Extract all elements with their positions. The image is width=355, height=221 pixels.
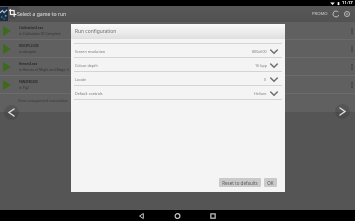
- staticText: DISCIPL2.EXE: [19, 44, 39, 48]
- staticText: in disciples: [19, 49, 37, 54]
- button[interactable]: Colour depth: [71, 58, 285, 72]
- staticText: Locale: [75, 77, 87, 82]
- staticText: Default controls: [75, 91, 103, 96]
- staticText: in Civilization III Complete: [19, 31, 61, 36]
- staticText: Colour depth: [75, 63, 98, 68]
- staticText: Helium: [254, 91, 267, 96]
- staticText: 11:17: [342, 0, 353, 6]
- button[interactable]: Default controls: [71, 86, 285, 100]
- staticText: Screen resolution: [75, 49, 106, 54]
- staticText: Run configuration: [75, 28, 117, 35]
- staticText: OK: [267, 180, 274, 186]
- button[interactable]: DISCIPL2.EXE: [0, 40, 355, 58]
- button[interactable]: Screen resolution: [71, 44, 285, 58]
- button[interactable]: Civilization2.exe: [0, 22, 355, 40]
- button[interactable]: Previous: [4, 105, 19, 120]
- button[interactable]: OK: [264, 178, 277, 187]
- staticText: 800x600: [252, 49, 267, 54]
- staticText: Heroes3.exe: [19, 62, 38, 66]
- button[interactable]: Locale: [71, 72, 285, 86]
- button[interactable]: Refresh: [331, 9, 341, 19]
- button[interactable]: Reset to defaults: [219, 178, 261, 187]
- staticText: Select a game to run: [17, 11, 67, 18]
- staticText: 16 bpp: [255, 63, 267, 68]
- staticText: PROMO: [312, 11, 328, 17]
- button[interactable]: Info: [342, 9, 352, 19]
- staticText: PANZERI.EXE: [19, 80, 38, 84]
- staticText: Reset to defaults: [222, 180, 258, 186]
- button[interactable]: PANZERI.EXE: [0, 76, 355, 94]
- button[interactable]: Heroes3.exe: [0, 58, 355, 76]
- button[interactable]: Next: [335, 104, 350, 119]
- staticText: 0: [264, 77, 267, 82]
- staticText: Show unsupported executables: [18, 98, 68, 103]
- staticText: in Heroes of Might and Magic 3: [19, 67, 69, 72]
- staticText: Civilization2.exe: [19, 26, 44, 30]
- staticText: in Pg2: [19, 85, 29, 90]
